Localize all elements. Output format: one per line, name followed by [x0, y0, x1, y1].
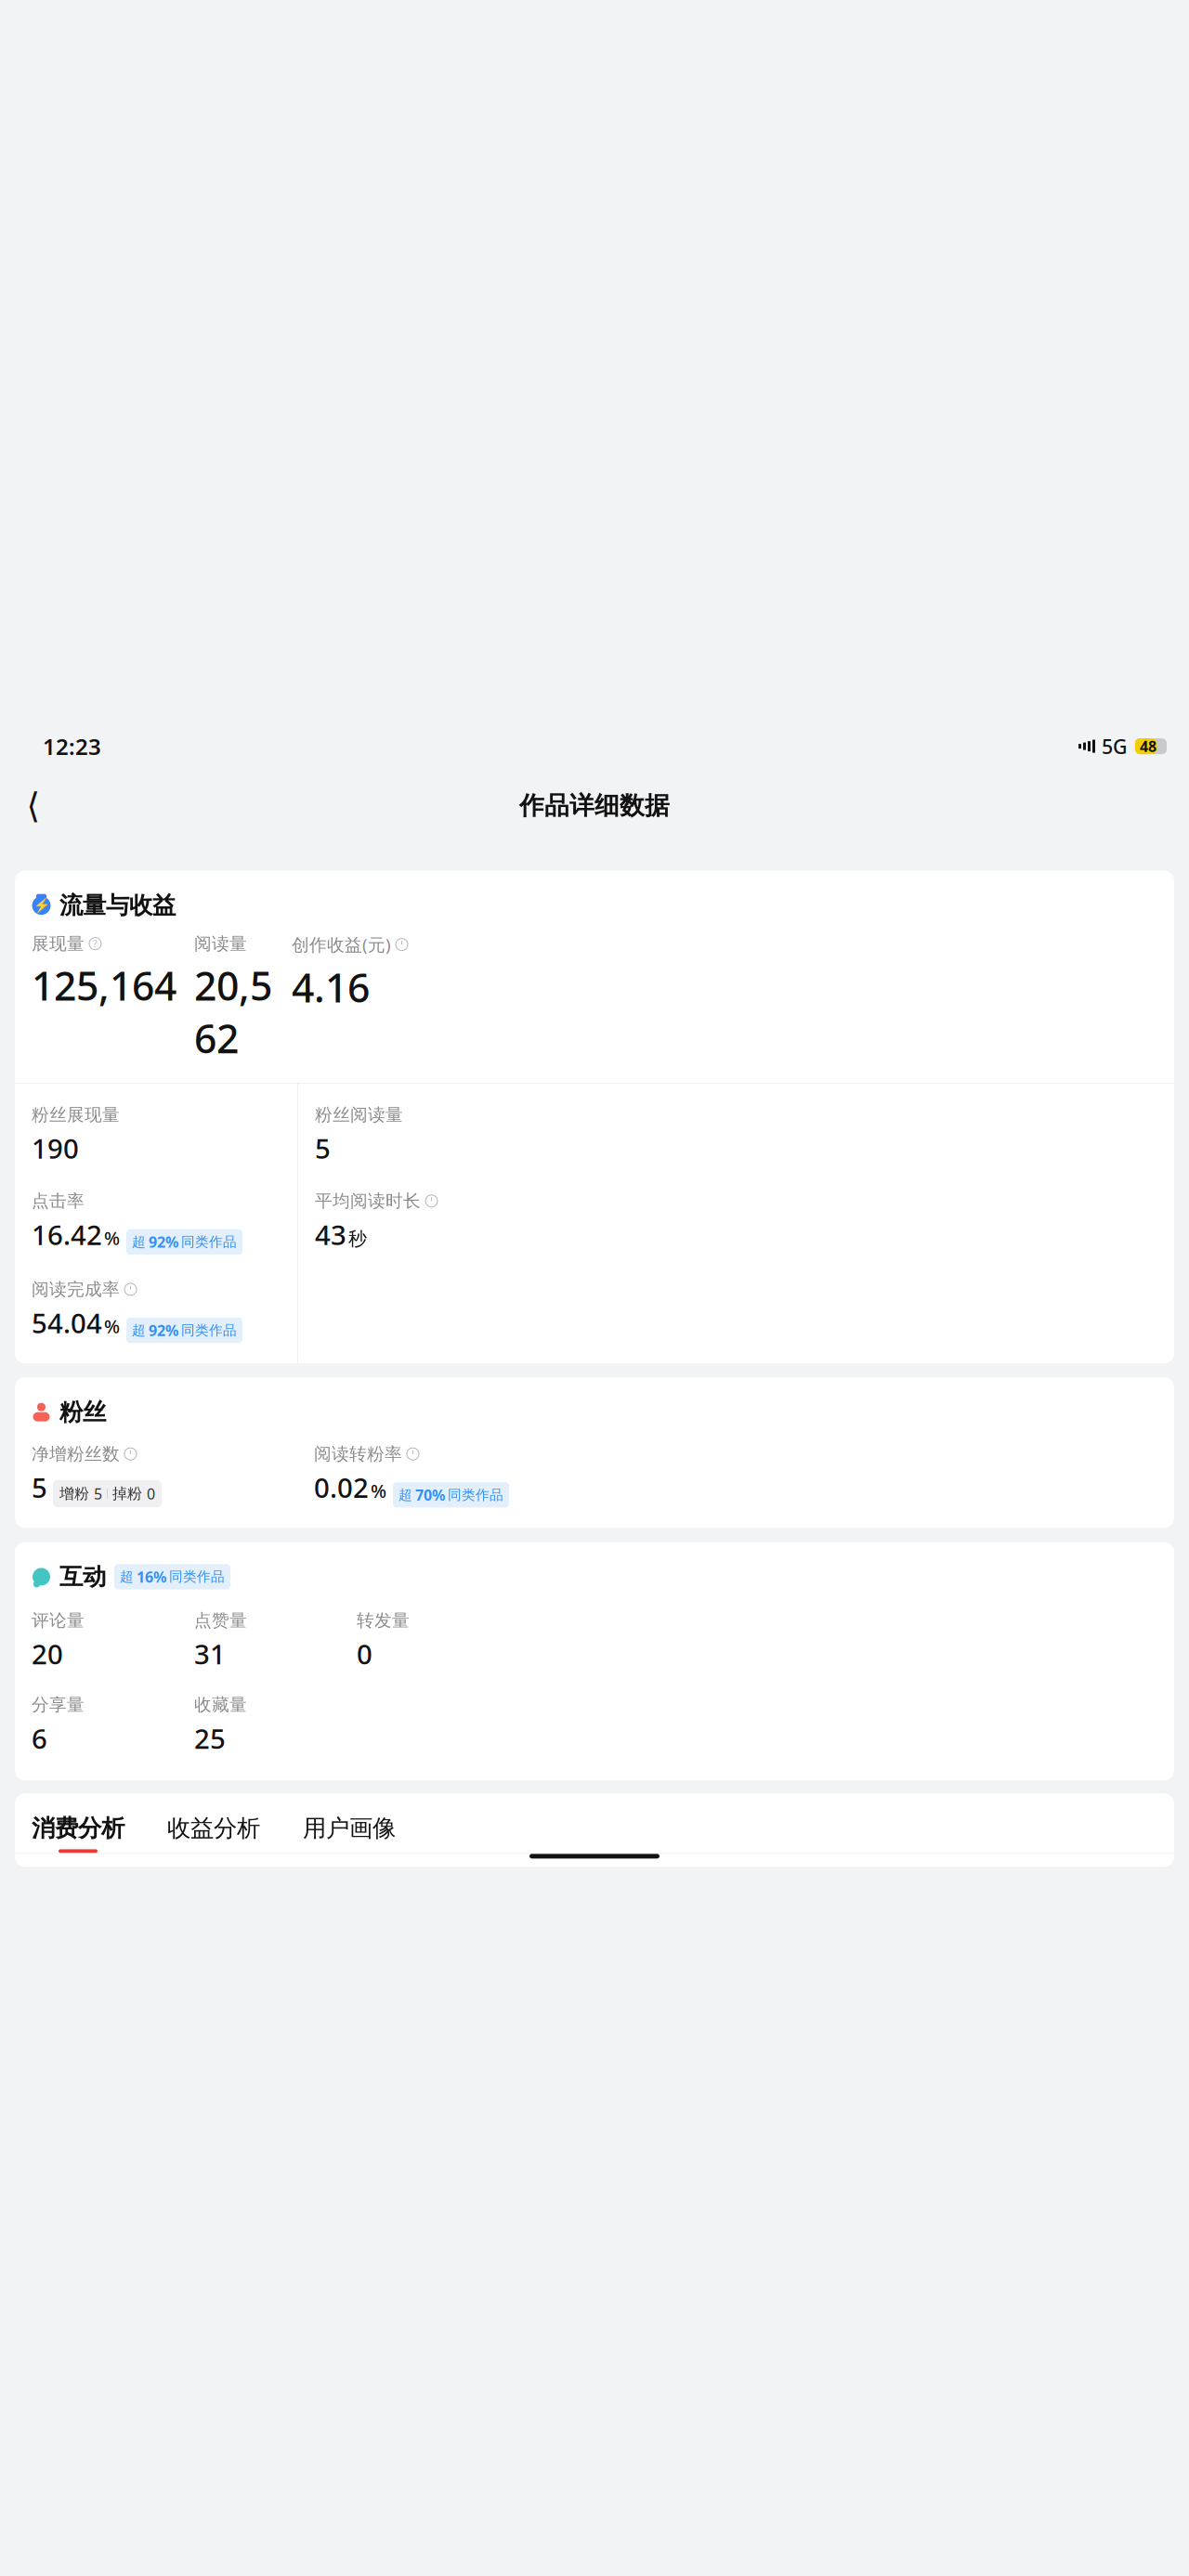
button[interactable]: 返回: [13, 785, 54, 826]
staticText: 12:23: [43, 731, 101, 761]
staticText: 92%: [149, 1320, 178, 1340]
staticText: 16%: [137, 1567, 166, 1587]
staticText: 展现量: [32, 933, 85, 954]
staticText: 互动: [59, 1562, 106, 1591]
staticText: 超: [399, 1487, 412, 1503]
staticText: 评论量: [32, 1610, 85, 1631]
staticText: 125,164: [32, 959, 176, 1012]
staticText: 收藏量: [194, 1694, 247, 1715]
staticText: 增粉: [59, 1485, 89, 1503]
staticText: 25: [194, 1720, 226, 1756]
button[interactable]: 收益分析: [167, 1814, 269, 1853]
staticText: 5: [32, 1469, 47, 1505]
staticText: 转发量: [357, 1610, 410, 1631]
button[interactable]: 消费分析: [32, 1814, 134, 1853]
staticText: 92%: [149, 1232, 178, 1252]
staticText: 5: [315, 1130, 331, 1166]
button[interactable]: 用户画像: [303, 1814, 405, 1853]
staticText: 粉丝阅读量: [315, 1104, 403, 1125]
staticText: 5: [94, 1484, 102, 1504]
staticText: 20: [32, 1636, 63, 1672]
staticText: 净增粉丝数: [32, 1443, 120, 1465]
staticText: 阅读完成率: [32, 1279, 120, 1300]
staticText: 70%: [415, 1485, 445, 1505]
staticText: ⚡: [33, 898, 50, 913]
staticText: 43: [315, 1216, 346, 1253]
staticText: 6: [32, 1720, 47, 1756]
staticText: %: [104, 1225, 120, 1250]
staticText: 粉丝: [59, 1398, 106, 1427]
staticText: 创作收益(元): [292, 933, 391, 956]
staticText: 掉粉: [112, 1485, 142, 1503]
staticText: 同类作品: [448, 1487, 503, 1503]
staticText: 用户画像: [303, 1814, 396, 1843]
staticText: 同类作品: [181, 1322, 237, 1339]
staticText: 平均阅读时长: [315, 1190, 421, 1212]
staticText: 流量与收益: [59, 891, 176, 920]
staticText: 作品详细数据: [519, 790, 670, 821]
staticText: 消费分析: [32, 1814, 124, 1843]
staticText: 同类作品: [181, 1234, 237, 1250]
staticText: 31: [194, 1636, 226, 1672]
staticText: 收益分析: [167, 1814, 260, 1843]
staticText: 54.04: [32, 1305, 102, 1341]
staticText: 阅读转粉率: [314, 1443, 402, 1465]
staticText: 粉丝展现量: [32, 1104, 120, 1125]
staticText: 秒: [348, 1227, 367, 1250]
staticText: 点赞量: [194, 1610, 247, 1631]
staticText: 0.02: [314, 1469, 369, 1505]
staticText: 点击率: [32, 1190, 85, 1212]
staticText: 0: [147, 1484, 155, 1504]
staticText: 4.16: [292, 961, 370, 1013]
staticText: %: [104, 1314, 120, 1338]
staticText: 48: [1140, 736, 1156, 756]
staticText: 20,562: [194, 959, 272, 1064]
staticText: 超: [132, 1322, 146, 1339]
staticText: 阅读量: [194, 933, 247, 954]
staticText: ?: [93, 937, 98, 950]
staticText: 同类作品: [169, 1568, 225, 1585]
staticText: 190: [32, 1130, 79, 1166]
staticText: 超: [132, 1234, 146, 1250]
staticText: ⟨: [26, 786, 40, 825]
staticText: 5G: [1102, 733, 1128, 759]
staticText: 分享量: [32, 1694, 85, 1715]
staticText: %: [371, 1478, 386, 1503]
staticText: 16.42: [32, 1216, 102, 1253]
staticText: 0: [357, 1636, 372, 1672]
staticText: 超: [120, 1568, 134, 1585]
